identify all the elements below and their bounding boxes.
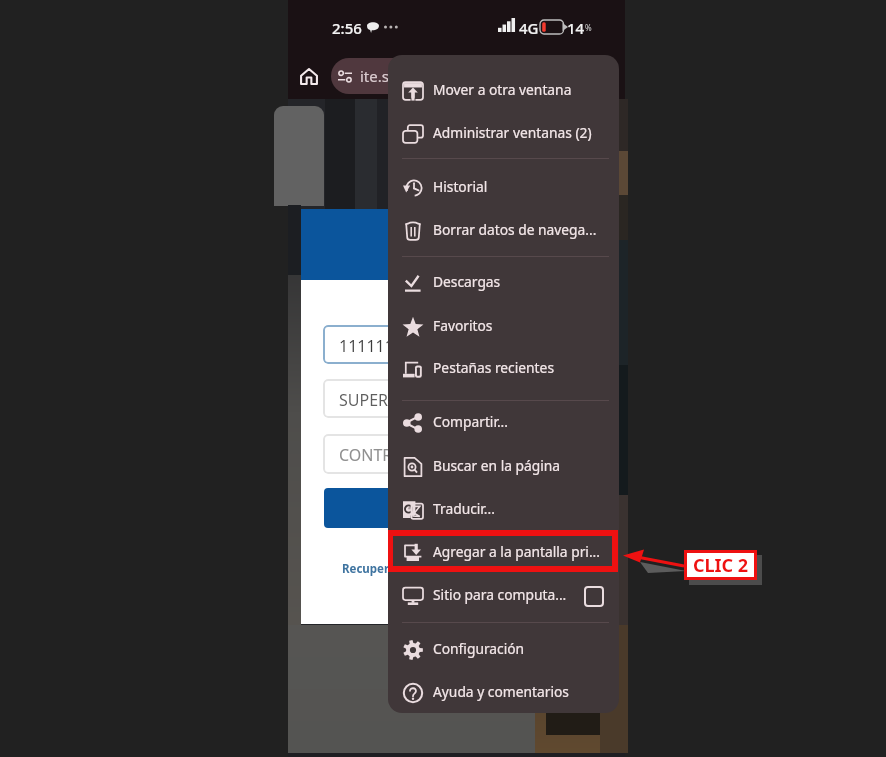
button[interactable]: SUPER xyxy=(323,379,493,418)
staticText: Compartir... xyxy=(433,412,509,431)
staticText: 4G xyxy=(519,18,539,38)
staticText: % xyxy=(585,22,592,33)
staticText: 111111 xyxy=(339,335,394,357)
button[interactable]: Ayuda y comentarios xyxy=(388,672,619,713)
button[interactable]: Descargas xyxy=(388,262,619,304)
button[interactable]: Compartir... xyxy=(388,402,619,444)
staticText: Agregar a la pantalla pri... xyxy=(433,542,600,561)
button[interactable] xyxy=(324,488,494,528)
staticText: Descargas xyxy=(433,272,501,291)
button[interactable]: Home xyxy=(298,64,320,86)
staticText: Historial xyxy=(433,177,488,196)
button[interactable]: Sitio para computa... xyxy=(388,575,619,617)
button[interactable]: Historial xyxy=(388,167,619,209)
button[interactable]: Pestañas recientes xyxy=(388,348,619,390)
button[interactable]: 111111 xyxy=(323,325,493,364)
staticText: Favoritos xyxy=(433,316,493,335)
staticText: 14 xyxy=(567,18,585,38)
staticText: Mover a otra ventana xyxy=(433,80,572,99)
staticText: Configuración xyxy=(433,639,525,658)
staticText: Buscar en la página xyxy=(433,456,561,475)
staticText: Ayuda y comentarios xyxy=(433,682,569,701)
staticText: ite.si xyxy=(360,66,393,86)
button[interactable]: Administrar ventanas (2) xyxy=(388,113,619,155)
staticText: CLIC 2 xyxy=(693,553,749,578)
button[interactable]: CLIC 2 xyxy=(684,550,757,580)
button[interactable]: Configuración xyxy=(388,629,619,671)
button[interactable]: Mover a otra ventana xyxy=(388,70,619,112)
staticText: Traducir... xyxy=(433,499,495,518)
staticText: Borrar datos de navega... xyxy=(433,220,597,239)
button[interactable]: CONTR xyxy=(323,434,493,474)
button[interactable]: Borrar datos de navega... xyxy=(388,210,619,252)
staticText: 2:56 xyxy=(332,18,362,38)
button[interactable]: Favoritos xyxy=(388,306,619,348)
button[interactable]: Traducir... xyxy=(388,489,619,531)
staticText: Recuperar contrase xyxy=(342,561,454,577)
button[interactable]: Agregar a la pantalla pri... xyxy=(388,532,619,574)
staticText: Administrar ventanas (2) xyxy=(433,123,592,142)
staticText: Sitio para computa... xyxy=(433,585,567,604)
button[interactable]: ite.si xyxy=(331,58,531,94)
staticText: CONTR xyxy=(339,444,393,466)
button[interactable]: Buscar en la página xyxy=(388,446,619,488)
staticText: Pestañas recientes xyxy=(433,358,554,377)
staticText: SUPER xyxy=(339,389,389,411)
